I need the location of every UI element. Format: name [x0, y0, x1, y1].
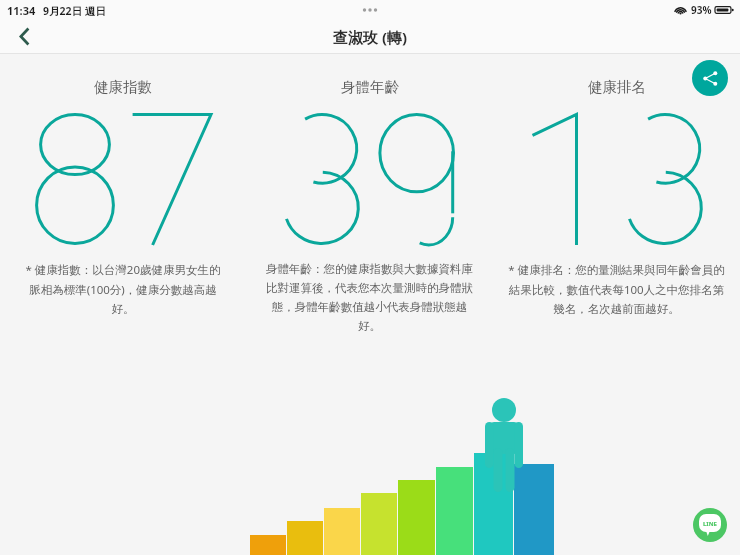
button[interactable]: Share — [692, 60, 728, 96]
staticText: 11:34 — [7, 3, 36, 18]
button[interactable]: Back — [0, 20, 48, 53]
staticText: 身體年齡 — [341, 78, 399, 96]
staticText: 9月22日 週日 — [43, 4, 106, 18]
button[interactable]: Share to LINE — [693, 508, 727, 542]
staticText: 查淑玫 (轉) — [333, 27, 408, 47]
staticText: 健康排名 — [588, 78, 646, 96]
staticText: LINE — [703, 520, 717, 528]
staticText: * 健康指數：以台灣20歲健康男女生的脈相為標準(100分)，健康分數越高越好。 — [22, 262, 224, 317]
staticText: 身體年齡：您的健康指數與大數據資料庫比對運算後，代表您本次量測時的身體狀態，身體… — [261, 262, 478, 334]
staticText: * 健康排名：您的量測結果與同年齡會員的結果比較，數值代表每100人之中您排名第… — [508, 262, 725, 317]
staticText: 93% — [691, 3, 712, 17]
staticText: 健康指數 — [94, 78, 152, 96]
